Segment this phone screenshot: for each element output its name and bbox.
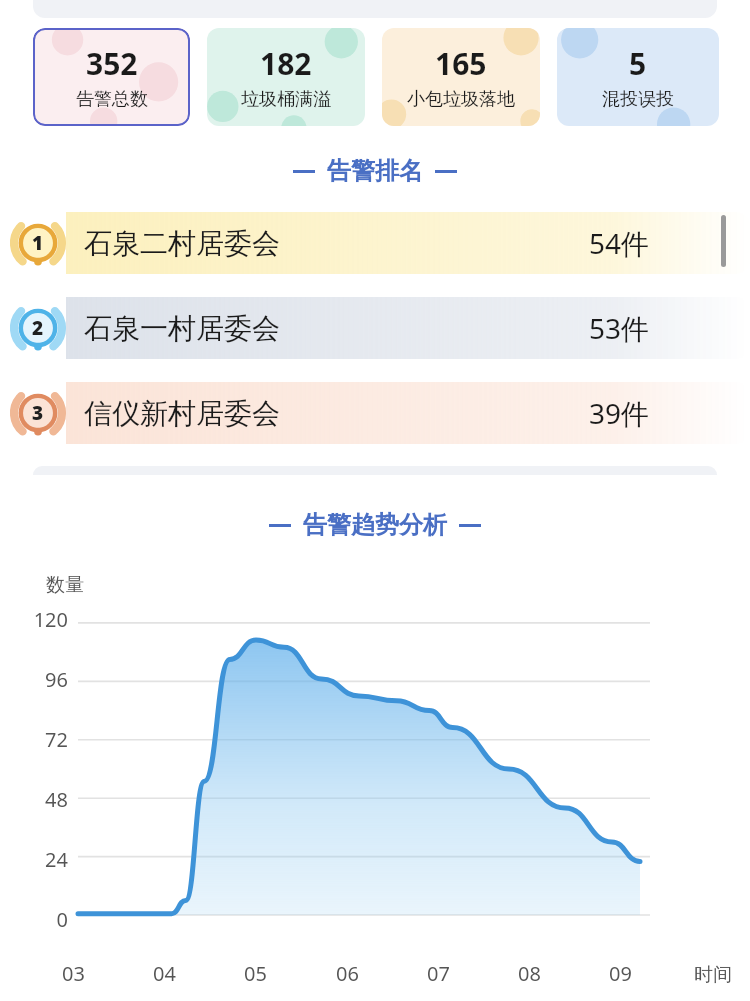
staticText: 54件 xyxy=(589,224,650,262)
button[interactable]: 3 xyxy=(0,382,750,444)
staticText: 数量 xyxy=(46,573,84,597)
staticText: 96 xyxy=(45,666,68,693)
staticText: 53件 xyxy=(589,309,650,347)
staticText: 0 xyxy=(56,906,68,933)
staticText: 小包垃圾落地 xyxy=(407,88,515,111)
staticText: 信仪新村居委会 xyxy=(84,396,280,431)
staticText: 3 xyxy=(32,400,44,426)
staticText: 05 xyxy=(244,960,267,987)
staticText: 06 xyxy=(336,960,359,987)
staticText: 石泉一村居委会 xyxy=(84,311,280,346)
staticText: 1 xyxy=(32,230,44,256)
staticText: 2 xyxy=(32,315,44,341)
staticText: 告警排名 xyxy=(327,156,423,186)
staticText: 165 xyxy=(435,43,487,84)
button[interactable]: 2 xyxy=(0,297,750,359)
staticText: 182 xyxy=(260,43,312,84)
staticText: 告警趋势分析 xyxy=(303,510,447,540)
button[interactable]: 5 xyxy=(557,28,719,126)
staticText: 5 xyxy=(629,43,647,84)
button[interactable]: 1 xyxy=(0,212,750,274)
staticText: 时间 xyxy=(694,963,732,987)
staticText: 告警总数 xyxy=(76,88,148,111)
staticText: 垃圾桶满溢 xyxy=(241,88,331,111)
button[interactable]: 352 xyxy=(33,28,190,126)
staticText: 120 xyxy=(33,606,68,633)
staticText: 09 xyxy=(609,960,632,987)
staticText: 72 xyxy=(45,726,68,753)
staticText: 07 xyxy=(427,960,450,987)
staticText: 39件 xyxy=(589,394,650,432)
staticText: 混投误投 xyxy=(602,88,674,111)
staticText: 352 xyxy=(86,43,138,84)
staticText: 24 xyxy=(45,846,68,873)
staticText: 03 xyxy=(62,960,85,987)
staticText: 石泉二村居委会 xyxy=(84,226,280,261)
button[interactable]: 165 xyxy=(382,28,540,126)
button[interactable]: 182 xyxy=(207,28,365,126)
staticText: 48 xyxy=(45,786,68,813)
staticText: 04 xyxy=(153,960,176,987)
staticText: 08 xyxy=(518,960,541,987)
